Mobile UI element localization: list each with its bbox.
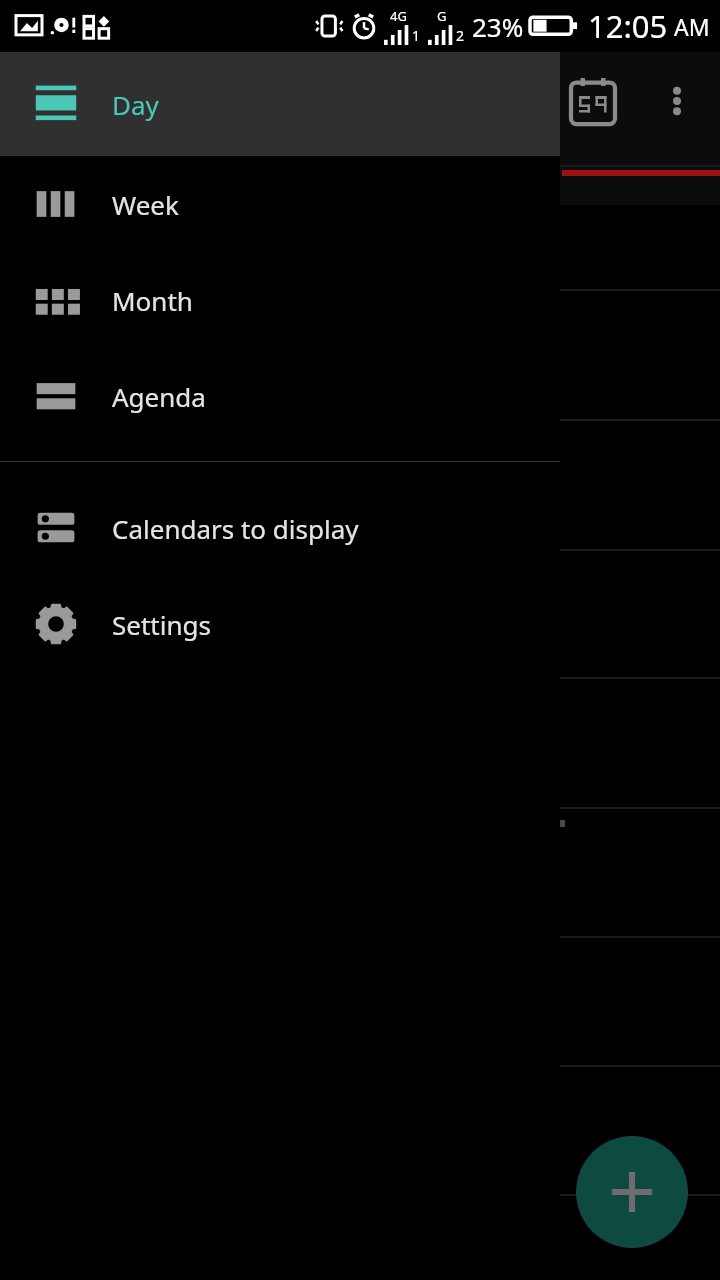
button[interactable]: More options — [650, 74, 704, 128]
staticText: Day — [112, 87, 159, 122]
staticText: 23% — [472, 9, 524, 44]
button[interactable]: Add event — [576, 1136, 688, 1248]
staticText: 2 — [456, 26, 465, 45]
button[interactable]: Week — [0, 156, 560, 252]
staticText: Agenda — [112, 379, 206, 414]
staticText: G — [437, 7, 447, 25]
staticText: Calendars to display — [112, 511, 359, 546]
staticText: 12:05 — [588, 5, 668, 47]
button[interactable]: Today, 29 — [564, 74, 622, 132]
staticText: Week — [112, 187, 179, 222]
button[interactable]: Calendars to display — [0, 480, 560, 576]
staticText: 4G — [390, 7, 407, 25]
staticText: 1 — [412, 26, 421, 45]
button[interactable]: Day — [0, 52, 560, 156]
staticText: AM — [674, 11, 710, 42]
staticText: Month — [112, 283, 193, 318]
staticText: Settings — [112, 607, 211, 642]
button[interactable]: Agenda — [0, 348, 560, 444]
button[interactable]: Month — [0, 252, 560, 348]
button[interactable]: Settings — [0, 576, 560, 672]
